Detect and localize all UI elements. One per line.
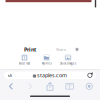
staticText: Print bbox=[24, 46, 36, 53]
button[interactable]: Reload bbox=[84, 72, 96, 79]
button[interactable]: Tabs bbox=[79, 81, 99, 92]
button[interactable]: Back bbox=[1, 81, 21, 92]
button[interactable]: Share bbox=[50, 45, 72, 54]
staticText: My Files bbox=[41, 62, 51, 65]
staticText: Stock Images bbox=[60, 62, 76, 65]
button[interactable]: My Files bbox=[36, 55, 56, 65]
staticText: ᴀA bbox=[7, 73, 12, 78]
button[interactable]: Share bbox=[40, 81, 60, 92]
button[interactable]: Bookmarks bbox=[60, 81, 79, 92]
button[interactable]: Close bbox=[75, 47, 79, 51]
staticText: staples.com bbox=[37, 72, 67, 79]
staticText: Share bbox=[56, 47, 66, 52]
staticText: Add Text bbox=[19, 62, 30, 65]
button[interactable]: Forward bbox=[21, 81, 40, 92]
button[interactable]: Stock Images bbox=[58, 55, 78, 65]
button[interactable]: Page settings bbox=[4, 72, 16, 79]
button[interactable]: Print bbox=[19, 45, 41, 54]
button[interactable]: Add Text bbox=[14, 55, 34, 65]
